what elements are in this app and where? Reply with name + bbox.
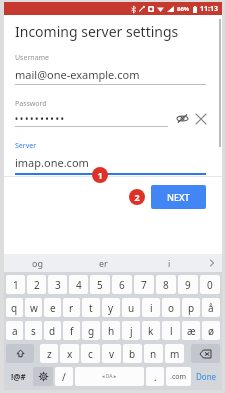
staticText: n xyxy=(150,347,157,361)
button[interactable]: Show password xyxy=(177,113,188,124)
staticText: p xyxy=(188,301,195,315)
button[interactable]: .com xyxy=(166,367,191,386)
button[interactable]: 0 xyxy=(200,275,220,294)
button[interactable]: !@# xyxy=(6,367,31,386)
button[interactable]: i xyxy=(142,298,160,317)
button[interactable]: l xyxy=(162,321,180,340)
button[interactable]: u xyxy=(122,298,140,317)
button[interactable]: h xyxy=(102,321,120,340)
button[interactable]: x xyxy=(60,344,79,363)
staticText: z xyxy=(47,347,52,361)
button[interactable]: k xyxy=(142,321,160,340)
button[interactable]: g xyxy=(82,321,100,340)
button[interactable]: c xyxy=(81,344,100,363)
staticText: / xyxy=(62,370,66,384)
button[interactable]: 4 xyxy=(69,275,88,294)
staticText: 9 xyxy=(185,278,191,292)
button[interactable]: ø xyxy=(202,321,220,340)
staticText: Password xyxy=(15,99,47,109)
staticText: 86% xyxy=(177,5,190,13)
button[interactable]: z xyxy=(40,344,58,363)
button[interactable]: Username xyxy=(15,53,206,85)
button[interactable]: . xyxy=(146,367,164,386)
staticText: 4 xyxy=(76,278,82,292)
staticText: a xyxy=(12,324,18,338)
staticText: Username xyxy=(15,53,50,63)
button[interactable]: f xyxy=(63,321,80,340)
staticText: imap.one.com xyxy=(15,155,89,170)
button[interactable]: 6 xyxy=(112,275,132,294)
staticText: Done xyxy=(196,371,217,382)
staticText: r xyxy=(69,301,74,315)
staticText: i xyxy=(168,257,171,269)
button[interactable]: n xyxy=(144,344,163,363)
button[interactable]: w xyxy=(25,298,42,317)
button[interactable]: er xyxy=(70,254,136,272)
staticText: b xyxy=(129,347,136,361)
staticText: g xyxy=(88,324,95,338)
button[interactable]: s xyxy=(25,321,42,340)
staticText: .com xyxy=(170,372,187,382)
staticText: 2 xyxy=(134,191,140,203)
staticText: !@# xyxy=(11,371,26,382)
staticText: 8 xyxy=(163,278,169,292)
staticText: Incoming server settings xyxy=(15,22,179,41)
button[interactable]: d xyxy=(44,321,61,340)
button[interactable]: o xyxy=(162,298,180,317)
button[interactable]: t xyxy=(82,298,100,317)
staticText: er xyxy=(99,257,108,269)
button[interactable]: Done xyxy=(193,367,220,386)
button[interactable]: v xyxy=(102,344,121,363)
button[interactable]: 5 xyxy=(90,275,110,294)
staticText: 1 xyxy=(13,278,19,292)
button[interactable]: Password xyxy=(15,99,206,127)
button[interactable]: m xyxy=(165,344,184,363)
button[interactable]: 2 xyxy=(27,275,46,294)
button[interactable]: 7 xyxy=(134,275,154,294)
button[interactable]: b xyxy=(123,344,142,363)
staticText: 3 xyxy=(55,278,61,292)
button[interactable]: e xyxy=(44,298,61,317)
button[interactable]: Space xyxy=(75,367,144,386)
staticText: w xyxy=(30,301,38,315)
button[interactable]: og xyxy=(4,254,70,272)
staticText: u xyxy=(128,301,135,315)
staticText: . xyxy=(154,370,157,384)
staticText: 6 xyxy=(119,278,125,292)
staticText: k xyxy=(148,324,154,338)
button[interactable]: / xyxy=(55,367,73,386)
staticText: q xyxy=(11,301,18,315)
button[interactable]: Backspace xyxy=(191,344,220,363)
button[interactable]: y xyxy=(102,298,120,317)
button[interactable]: i xyxy=(136,254,202,272)
staticText: y xyxy=(108,301,114,315)
button[interactable]: 1 xyxy=(6,275,25,294)
button[interactable]: q xyxy=(6,298,23,317)
button[interactable]: å xyxy=(202,298,220,317)
staticText: h xyxy=(108,324,115,338)
button[interactable]: Clear xyxy=(196,114,206,124)
staticText: s xyxy=(31,324,36,338)
button[interactable]: Shift xyxy=(6,344,34,363)
staticText: å xyxy=(208,301,214,315)
staticText: v xyxy=(109,347,115,361)
staticText: 1 xyxy=(97,169,103,181)
button[interactable]: Settings xyxy=(33,367,53,386)
staticText: l xyxy=(170,324,173,338)
button[interactable]: 3 xyxy=(48,275,67,294)
button[interactable]: r xyxy=(63,298,80,317)
staticText: i xyxy=(150,301,153,315)
staticText: æ xyxy=(187,324,196,338)
button[interactable]: p xyxy=(182,298,200,317)
button[interactable]: 9 xyxy=(178,275,198,294)
staticText: x xyxy=(67,347,73,361)
staticText: NEXT xyxy=(167,191,190,203)
button[interactable]: a xyxy=(6,321,23,340)
button[interactable]: More suggestions xyxy=(202,254,222,272)
staticText: j xyxy=(130,324,133,338)
button[interactable]: 8 xyxy=(156,275,176,294)
staticText: o xyxy=(168,301,175,315)
button[interactable]: æ xyxy=(182,321,200,340)
button[interactable]: j xyxy=(122,321,140,340)
button[interactable]: NEXT xyxy=(151,185,206,209)
